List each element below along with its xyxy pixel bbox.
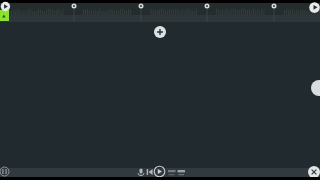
button[interactable]: End marker bbox=[308, 0, 320, 14]
button[interactable]: Skip to start bbox=[145, 167, 155, 177]
button[interactable]: Clip bbox=[0, 10, 9, 21]
button[interactable]: Marker bbox=[202, 1, 212, 23]
button[interactable]: Tempo bbox=[167, 167, 177, 177]
button[interactable]: Marker bbox=[136, 1, 146, 23]
button[interactable]: Marker bbox=[269, 1, 279, 23]
button[interactable]: Marker bbox=[69, 1, 79, 23]
button[interactable]: Metronome bbox=[0, 166, 10, 177]
button[interactable]: Scroll handle bbox=[311, 80, 320, 96]
button[interactable]: Record bbox=[136, 167, 146, 177]
button[interactable]: Add track bbox=[154, 26, 166, 38]
button[interactable]: Time signature bbox=[177, 167, 187, 177]
button[interactable]: Close bbox=[308, 166, 320, 178]
button[interactable]: Playhead bbox=[0, 0, 11, 13]
button[interactable]: Play bbox=[153, 165, 166, 178]
